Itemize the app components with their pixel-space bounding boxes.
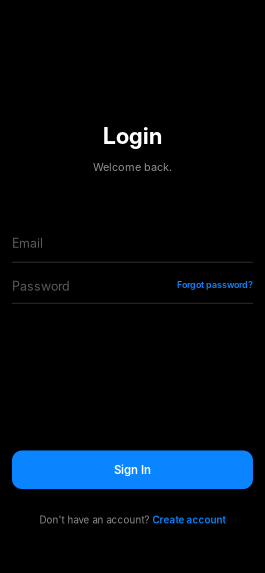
staticText: Sign In bbox=[114, 463, 151, 477]
staticText: Don't have an account? bbox=[39, 514, 149, 526]
button[interactable]: Forgot password? bbox=[177, 279, 253, 293]
staticText: Password bbox=[12, 279, 70, 294]
staticText: Login bbox=[103, 122, 162, 149]
staticText: Welcome back. bbox=[93, 160, 172, 174]
staticText: Create account bbox=[152, 514, 225, 526]
button[interactable]: Sign In bbox=[12, 450, 253, 489]
button[interactable]: Create account bbox=[152, 514, 225, 526]
staticText: Email bbox=[12, 236, 43, 251]
staticText: Forgot password? bbox=[177, 279, 253, 290]
